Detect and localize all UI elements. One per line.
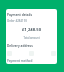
staticText: Delivery address <box>7 44 33 48</box>
staticText: £1,248.50 <box>7 27 56 33</box>
staticText: Total amount <box>7 36 56 40</box>
staticText: Payment details <box>7 13 33 17</box>
staticText: Payment method <box>7 59 33 63</box>
staticText: Order #284193 <box>7 19 27 23</box>
